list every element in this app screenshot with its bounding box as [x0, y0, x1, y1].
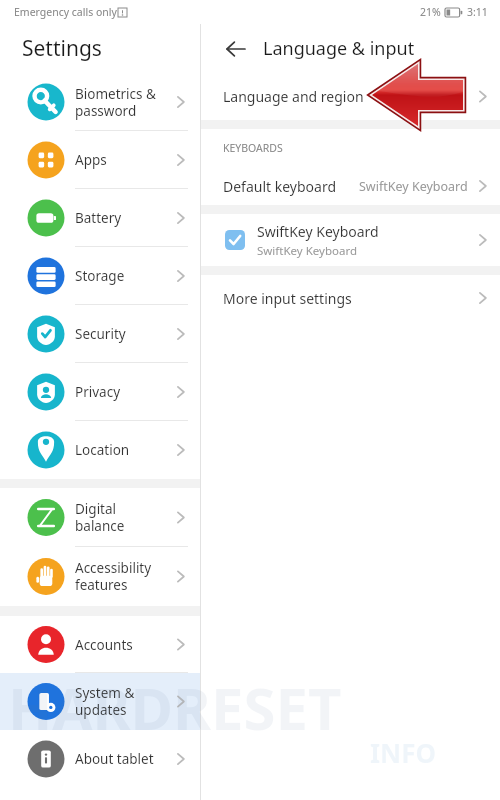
staticText: Accessibility features	[75, 559, 152, 594]
staticText: INFO	[370, 735, 437, 770]
staticText: More input settings	[223, 289, 352, 308]
staticText: Accounts	[75, 636, 133, 654]
staticText: SwiftKey Keyboard	[359, 178, 468, 195]
staticText: Language & input	[263, 36, 415, 61]
button[interactable]: More input settings	[201, 275, 500, 321]
button[interactable]: Accounts	[0, 616, 200, 673]
staticText: Digital balance	[75, 500, 125, 535]
staticText: Settings	[22, 34, 102, 63]
staticText: Location	[75, 441, 130, 459]
button[interactable]: Location	[0, 421, 200, 479]
button[interactable]: About tablet	[0, 730, 200, 788]
staticText: Biometrics & password	[75, 85, 156, 120]
button[interactable]: Security	[0, 305, 200, 363]
staticText: Apps	[75, 151, 107, 169]
staticText: HARDRESET	[8, 668, 500, 747]
button[interactable]: Digital balance	[0, 488, 200, 547]
button[interactable]: SwiftKey Keyboard	[201, 214, 500, 266]
staticText: SwiftKey Keyboard	[257, 222, 379, 241]
staticText: System & updates	[75, 684, 135, 719]
staticText: Default keyboard	[223, 177, 337, 196]
staticText: About tablet	[75, 750, 154, 768]
button[interactable]: Default keyboard	[201, 167, 500, 205]
staticText: 21%	[420, 5, 441, 19]
staticText: SwiftKey Keyboard	[257, 243, 357, 259]
staticText: Storage	[75, 267, 125, 285]
staticText: 3:11	[467, 5, 488, 19]
staticText: Privacy	[75, 383, 121, 401]
button[interactable]: Apps	[0, 131, 200, 189]
button[interactable]: Battery	[0, 189, 200, 247]
button[interactable]: Biometrics & password	[0, 73, 200, 131]
staticText: Security	[75, 325, 126, 343]
button[interactable]: Accessibility features	[0, 547, 200, 606]
staticText: Battery	[75, 209, 122, 227]
button[interactable]: Privacy	[0, 363, 200, 421]
button[interactable]: Storage	[0, 247, 200, 305]
staticText: KEYBOARDS	[223, 141, 283, 155]
staticText: Language and region	[223, 87, 364, 106]
button[interactable]: System & updates	[0, 673, 200, 730]
staticText: Emergency calls only	[14, 5, 117, 19]
button[interactable]: Back	[217, 30, 255, 68]
button[interactable]: Language and region	[201, 73, 500, 120]
